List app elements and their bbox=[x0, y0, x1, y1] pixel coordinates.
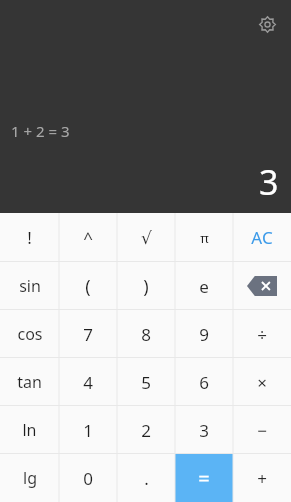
staticText: 8 bbox=[141, 323, 151, 346]
button[interactable]: sin bbox=[0, 262, 59, 310]
button[interactable]: √ bbox=[117, 213, 175, 262]
staticText: 2 bbox=[141, 419, 151, 442]
staticText: cos bbox=[17, 323, 43, 345]
staticText: 9 bbox=[199, 323, 209, 346]
staticText: × bbox=[257, 371, 267, 394]
staticText: = bbox=[198, 465, 210, 492]
button[interactable]: e bbox=[175, 262, 233, 310]
button[interactable]: ln bbox=[0, 406, 59, 454]
staticText: 1 + 2 = 3 bbox=[11, 121, 70, 141]
button[interactable]: cos bbox=[0, 310, 59, 358]
button[interactable]: ^ bbox=[59, 213, 117, 262]
staticText: 3 bbox=[259, 159, 279, 205]
button[interactable]: 1 bbox=[59, 406, 117, 454]
button[interactable]: 7 bbox=[59, 310, 117, 358]
button[interactable]: lg bbox=[0, 454, 59, 502]
staticText: 7 bbox=[83, 323, 93, 346]
staticText: 3 bbox=[199, 419, 209, 442]
staticText: ^ bbox=[83, 226, 93, 249]
button[interactable]: Settings bbox=[251, 8, 283, 40]
button[interactable]: 5 bbox=[117, 358, 175, 406]
staticText: AC bbox=[251, 226, 273, 249]
button[interactable]: − bbox=[233, 406, 291, 454]
button[interactable]: tan bbox=[0, 358, 59, 406]
button[interactable]: ÷ bbox=[233, 310, 291, 358]
staticText: 4 bbox=[83, 371, 93, 394]
staticText: ÷ bbox=[257, 323, 267, 346]
button[interactable]: ) bbox=[117, 262, 175, 310]
staticText: lg bbox=[23, 467, 37, 489]
button[interactable]: 8 bbox=[117, 310, 175, 358]
button[interactable]: × bbox=[233, 358, 291, 406]
button[interactable]: 2 bbox=[117, 406, 175, 454]
button[interactable]: . bbox=[117, 454, 175, 502]
button[interactable]: 0 bbox=[59, 454, 117, 502]
staticText: ! bbox=[27, 226, 32, 249]
button[interactable]: 4 bbox=[59, 358, 117, 406]
staticText: ( bbox=[85, 274, 91, 299]
staticText: e bbox=[199, 275, 209, 298]
staticText: 6 bbox=[199, 371, 209, 394]
staticText: sin bbox=[19, 275, 41, 297]
staticText: ) bbox=[143, 274, 149, 299]
staticText: 5 bbox=[141, 371, 151, 394]
button[interactable]: Backspace bbox=[233, 262, 291, 310]
staticText: 1 bbox=[83, 419, 93, 442]
staticText: √ bbox=[141, 228, 152, 248]
staticText: tan bbox=[17, 371, 42, 393]
staticText: + bbox=[257, 467, 267, 490]
button[interactable]: ( bbox=[59, 262, 117, 310]
staticText: 0 bbox=[83, 467, 93, 490]
button[interactable]: 6 bbox=[175, 358, 233, 406]
button[interactable]: + bbox=[233, 454, 291, 502]
staticText: . bbox=[144, 467, 149, 490]
button[interactable]: AC bbox=[233, 213, 291, 262]
button[interactable]: π bbox=[175, 213, 233, 262]
staticText: π bbox=[200, 229, 209, 247]
button[interactable]: = bbox=[175, 454, 233, 502]
button[interactable]: 9 bbox=[175, 310, 233, 358]
staticText: − bbox=[257, 419, 267, 442]
staticText: ln bbox=[22, 419, 37, 441]
button[interactable]: 3 bbox=[175, 406, 233, 454]
button[interactable]: ! bbox=[0, 213, 59, 262]
